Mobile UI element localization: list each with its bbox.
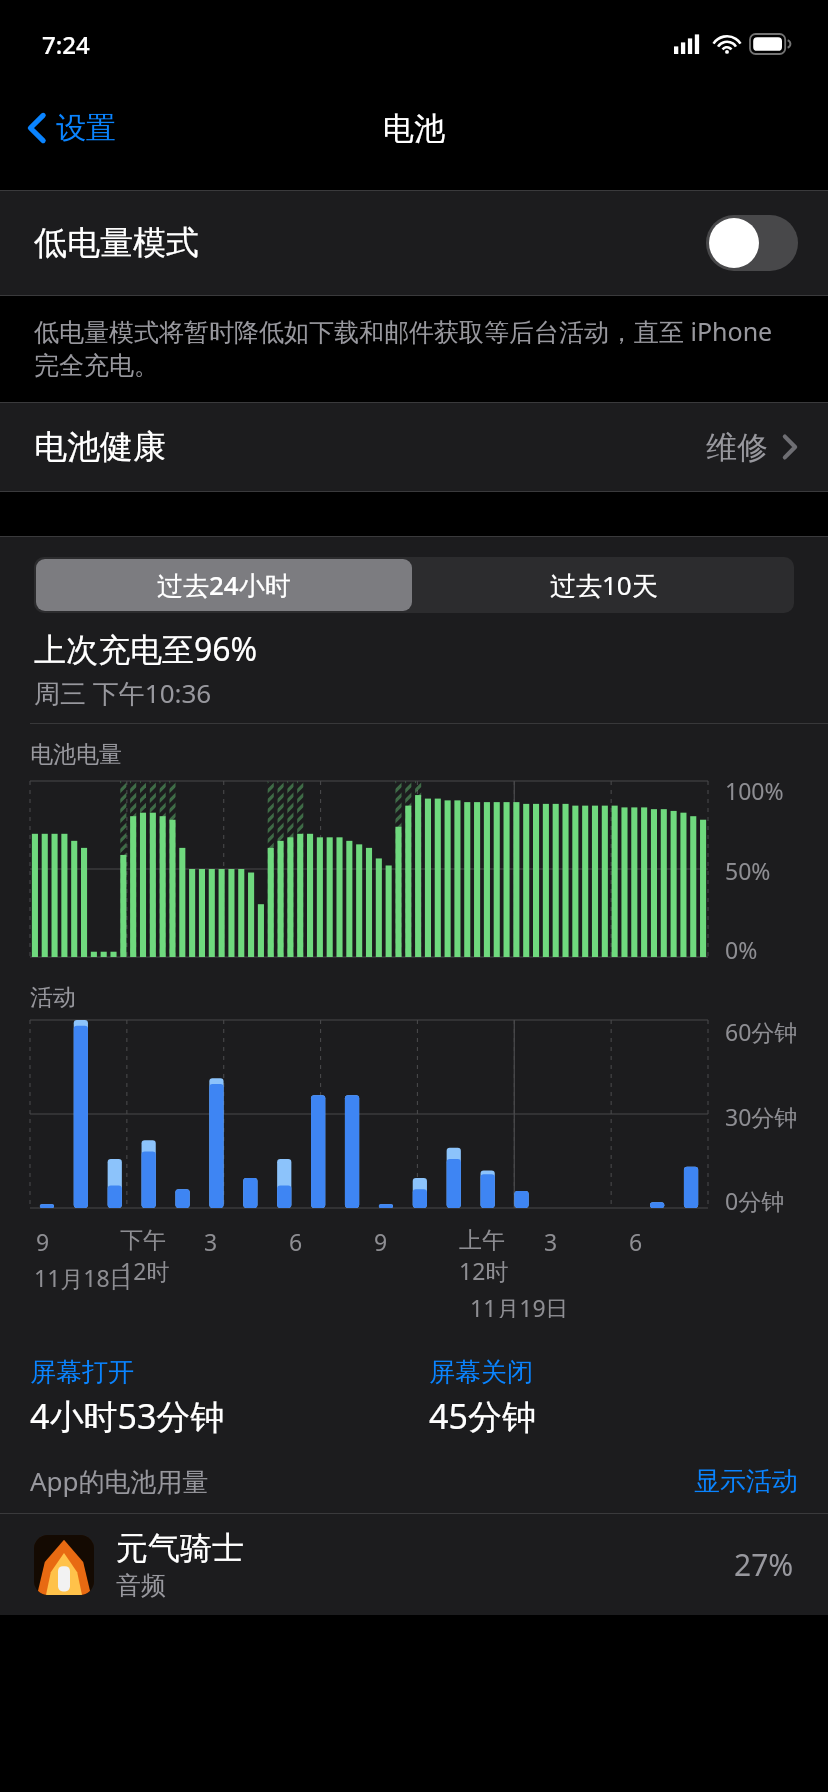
staticText: 50% <box>725 855 771 886</box>
staticText: 0分钟 <box>725 1185 785 1216</box>
staticText: 100% <box>725 775 784 806</box>
staticText: 11月19日 <box>470 1292 569 1318</box>
button[interactable]: 低电量模式开关 <box>706 215 798 271</box>
staticText: 0% <box>725 934 758 965</box>
button[interactable]: 过去10天 <box>414 557 794 613</box>
button[interactable]: 元气骑士 <box>0 1514 828 1615</box>
staticText: 音频 <box>116 1570 166 1601</box>
staticText: 9 <box>374 1226 388 1257</box>
staticText: 电池健康 <box>34 426 166 468</box>
staticText: 过去24小时 <box>157 567 291 603</box>
staticText: 元气骑士 <box>116 1528 244 1568</box>
button[interactable]: 显示活动 <box>694 1465 798 1498</box>
staticText: 显示活动 <box>694 1465 798 1498</box>
button[interactable]: 设置 <box>20 103 122 153</box>
staticText: 电池 <box>383 109 445 148</box>
staticText: 维修 <box>706 428 768 467</box>
staticText: App的电池用量 <box>30 1463 209 1499</box>
staticText: 60分钟 <box>725 1016 798 1047</box>
button[interactable]: 低电量模式 <box>0 191 828 295</box>
staticText: 过去10天 <box>550 567 658 603</box>
staticText: 设置 <box>56 109 116 147</box>
staticText: 活动 <box>30 983 76 1012</box>
button[interactable]: 电池健康 <box>0 403 828 491</box>
staticText: 3 <box>204 1226 218 1257</box>
staticText: 9 <box>36 1226 50 1257</box>
staticText: 7:24 <box>42 28 90 61</box>
staticText: 45分钟 <box>429 1393 536 1439</box>
staticText: 电池电量 <box>30 740 122 769</box>
staticText: 3 <box>544 1226 558 1257</box>
staticText: 4小时53分钟 <box>30 1393 225 1439</box>
staticText: 下午 12时 <box>120 1226 170 1286</box>
staticText: 上次充电至96% <box>34 627 258 671</box>
staticText: 6 <box>629 1226 643 1257</box>
button[interactable]: 过去24小时 <box>36 559 412 611</box>
staticText: 屏幕打开 <box>30 1356 134 1389</box>
staticText: 11月18日 <box>34 1262 133 1293</box>
staticText: 30分钟 <box>725 1101 798 1132</box>
staticText: 周三 下午10:36 <box>34 675 212 711</box>
staticText: 上午 12时 <box>459 1226 509 1286</box>
staticText: 低电量模式 <box>34 222 199 264</box>
staticText: 屏幕关闭 <box>429 1356 533 1389</box>
staticText: 27% <box>734 1544 794 1585</box>
staticText: 低电量模式将暂时降低如下载和邮件获取等后台活动，直至 iPhone 完全充电。 <box>34 314 788 382</box>
staticText: 6 <box>289 1226 303 1257</box>
